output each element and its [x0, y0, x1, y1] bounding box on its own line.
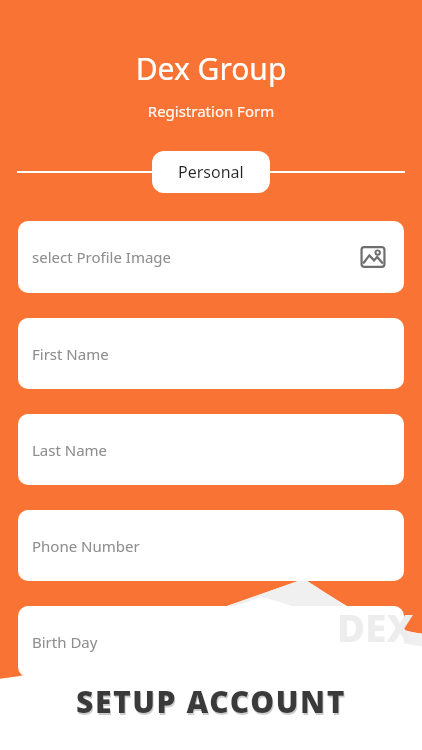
staticText: Dex Group: [0, 48, 422, 89]
button[interactable]: First Name: [18, 318, 404, 389]
button[interactable]: Personal: [152, 151, 270, 193]
staticText: Personal: [178, 161, 244, 183]
staticText: Phone Number: [32, 536, 140, 556]
staticText: SETUP ACCOUNT: [77, 683, 348, 724]
staticText: DEX: [337, 601, 414, 653]
button[interactable]: Birth Day: [18, 606, 404, 677]
button[interactable]: Pick profile image: [358, 242, 388, 272]
staticText: Registration Form: [0, 101, 422, 121]
staticText: select Profile Image: [32, 247, 358, 267]
button[interactable]: Last Name: [18, 414, 404, 485]
staticText: Last Name: [32, 440, 108, 460]
staticText: First Name: [32, 344, 109, 364]
staticText: SETUP ACCOUNT: [76, 681, 347, 722]
button[interactable]: select Profile Image: [18, 221, 404, 293]
button[interactable]: SETUP ACCOUNT: [0, 668, 422, 750]
button[interactable]: Phone Number: [18, 510, 404, 581]
staticText: Birth Day: [32, 632, 98, 652]
